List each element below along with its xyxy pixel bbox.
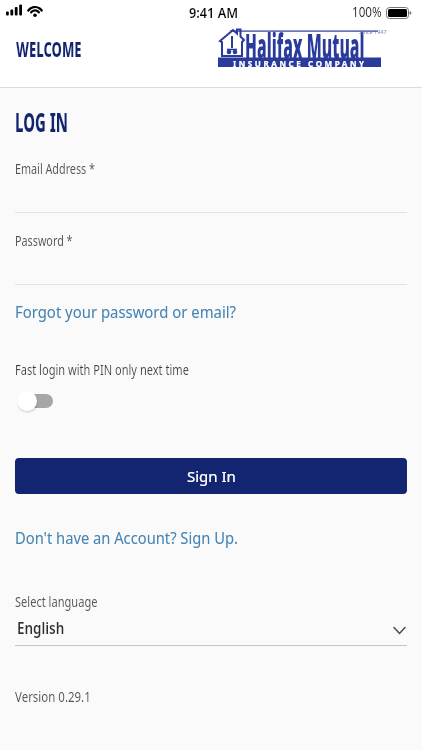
staticText: Email Address * [15,159,95,178]
staticText: 9:41 AM [189,2,238,22]
staticText: Halifax Mutual [245,22,365,70]
staticText: English [17,617,65,639]
staticText: Fast login with PIN only next time [15,360,190,379]
staticText: Don't have an Account? Sign Up. [15,527,239,549]
staticText: Since 1947 [359,28,387,35]
staticText: WELCOME [16,35,82,64]
staticText: Version 0.29.1 [15,688,91,706]
staticText: 100% [352,2,382,21]
staticText: Forgot your password or email? [15,301,236,323]
staticText: INSURANCE COMPANY [233,58,367,68]
staticText: Sign In [187,466,236,486]
staticText: Select language [15,593,98,611]
staticText: Password * [15,231,73,250]
staticText: LOG IN [15,103,68,140]
